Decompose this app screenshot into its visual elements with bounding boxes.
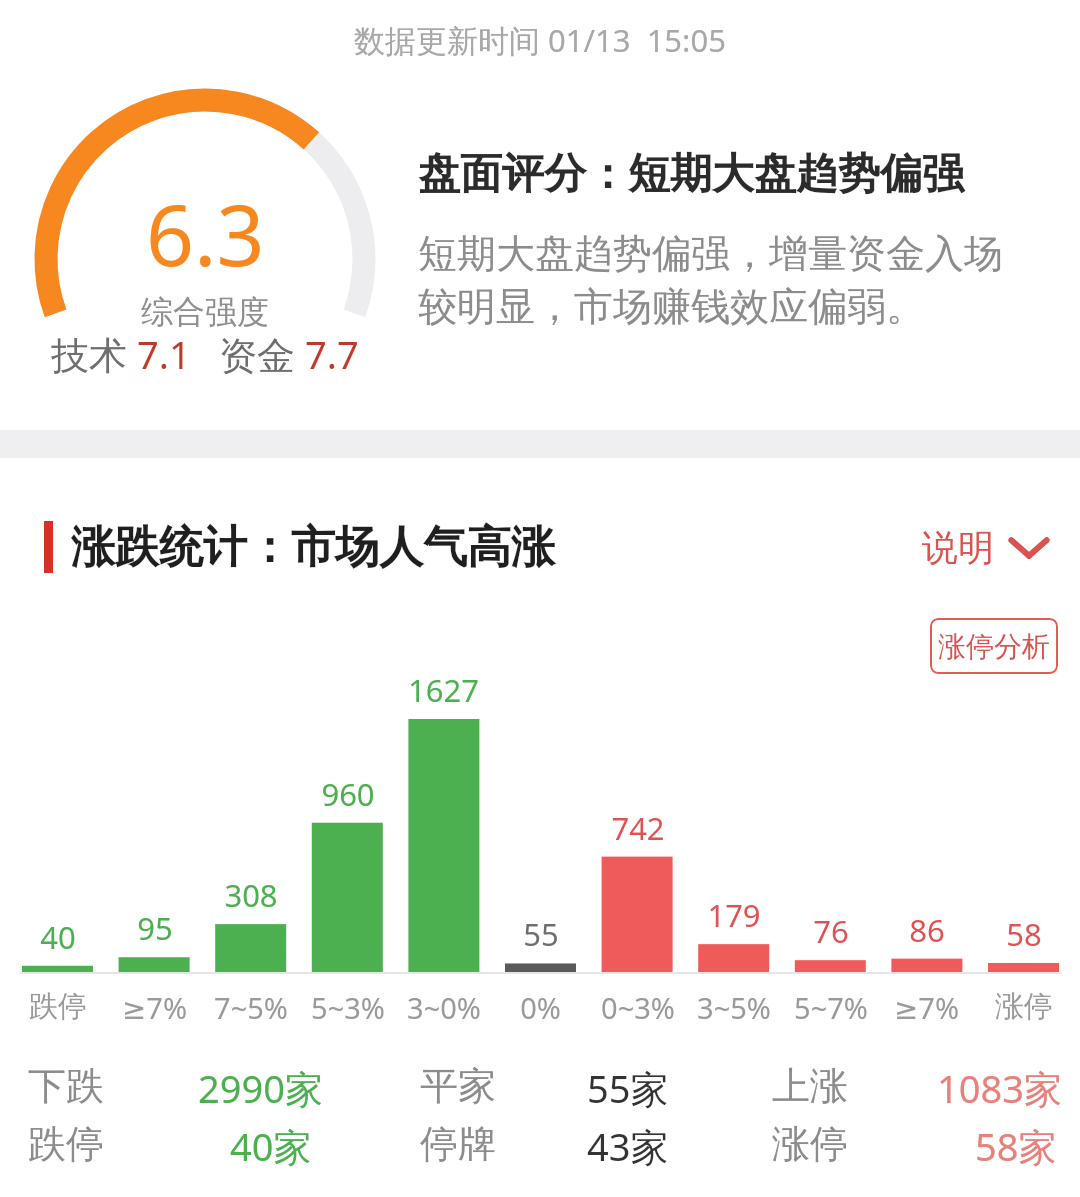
staticText: 3~0% bbox=[407, 988, 481, 1027]
staticText: 数据更新时间 01/13 15:05 bbox=[354, 19, 726, 61]
staticText: 1083家 bbox=[937, 1062, 1062, 1114]
staticText: 5~3% bbox=[311, 988, 385, 1027]
staticText: 2990家 bbox=[198, 1062, 323, 1114]
staticText: 上涨 bbox=[772, 1062, 848, 1110]
staticText: 7.7 bbox=[305, 328, 359, 380]
button[interactable]: 涨停分析 bbox=[930, 618, 1058, 674]
staticText: 说明 bbox=[922, 525, 994, 570]
staticText: 5~7% bbox=[794, 988, 868, 1027]
staticText: 涨停 bbox=[995, 988, 1053, 1025]
staticText: 40 bbox=[40, 916, 76, 958]
staticText: 7~5% bbox=[214, 988, 288, 1027]
staticText: 涨跌统计：市场人气高涨 bbox=[71, 520, 555, 575]
staticText: 58家 bbox=[975, 1120, 1057, 1172]
staticText: 43家 bbox=[587, 1120, 669, 1172]
staticText: 下跌 bbox=[28, 1062, 104, 1110]
staticText: 40家 bbox=[230, 1120, 312, 1172]
staticText: 1627 bbox=[408, 669, 479, 711]
staticText: 盘面评分：短期大盘趋势偏强 bbox=[418, 148, 964, 201]
staticText: ≥7% bbox=[122, 988, 187, 1027]
staticText: 960 bbox=[321, 773, 375, 815]
staticText: 179 bbox=[707, 894, 761, 936]
staticText: 短期大盘趋势偏强，增量资金入场较明显，市场赚钱效应偏弱。 bbox=[418, 229, 1038, 332]
staticText: 0% bbox=[520, 988, 561, 1027]
staticText: ≥7% bbox=[894, 988, 959, 1027]
staticText: 55 bbox=[523, 913, 559, 955]
button[interactable]: 涨跌统计：市场人气高涨 bbox=[0, 500, 1080, 594]
staticText: 涨停 bbox=[772, 1120, 848, 1168]
staticText: 742 bbox=[611, 807, 665, 849]
staticText: 跌停 bbox=[29, 988, 87, 1025]
staticText: 资金 bbox=[219, 328, 305, 380]
staticText: 跌停 bbox=[28, 1120, 104, 1168]
staticText: 6.3 bbox=[146, 176, 265, 290]
button[interactable]: 说明 bbox=[914, 525, 1058, 570]
other: 展开说明 bbox=[1008, 534, 1050, 562]
staticText: 综合强度 bbox=[141, 292, 269, 332]
staticText: 3~5% bbox=[697, 988, 771, 1027]
staticText: 86 bbox=[909, 909, 945, 951]
staticText: 0~3% bbox=[601, 988, 675, 1027]
staticText: 技术 bbox=[51, 328, 137, 380]
staticText: 55家 bbox=[587, 1062, 669, 1114]
staticText: 涨停分析 bbox=[938, 629, 1050, 664]
staticText: 58 bbox=[1006, 913, 1042, 955]
staticText: 76 bbox=[813, 910, 849, 952]
staticText: 平家 bbox=[420, 1062, 496, 1110]
staticText: 7.1 bbox=[137, 328, 191, 380]
staticText: 308 bbox=[224, 874, 278, 916]
staticText: 95 bbox=[137, 907, 173, 949]
staticText: 停牌 bbox=[420, 1120, 496, 1168]
